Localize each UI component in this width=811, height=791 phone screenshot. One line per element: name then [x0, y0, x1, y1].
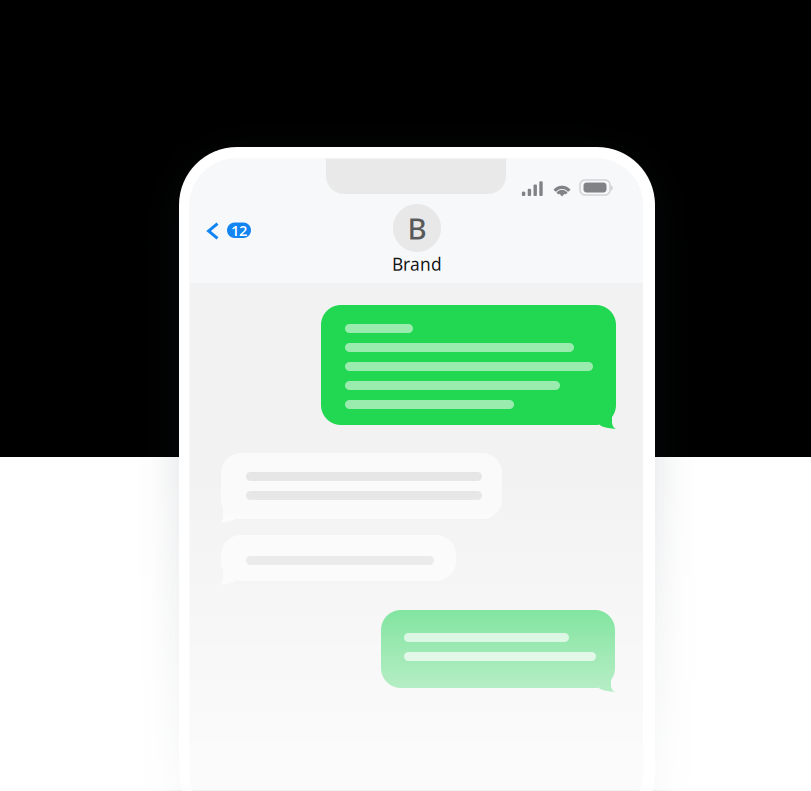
staticText: 12 — [231, 220, 247, 240]
button[interactable]: B — [357, 202, 477, 276]
staticText: B — [407, 208, 426, 247]
staticText: Brand — [392, 252, 442, 275]
button[interactable]: Back, 12 unread — [200, 212, 258, 249]
